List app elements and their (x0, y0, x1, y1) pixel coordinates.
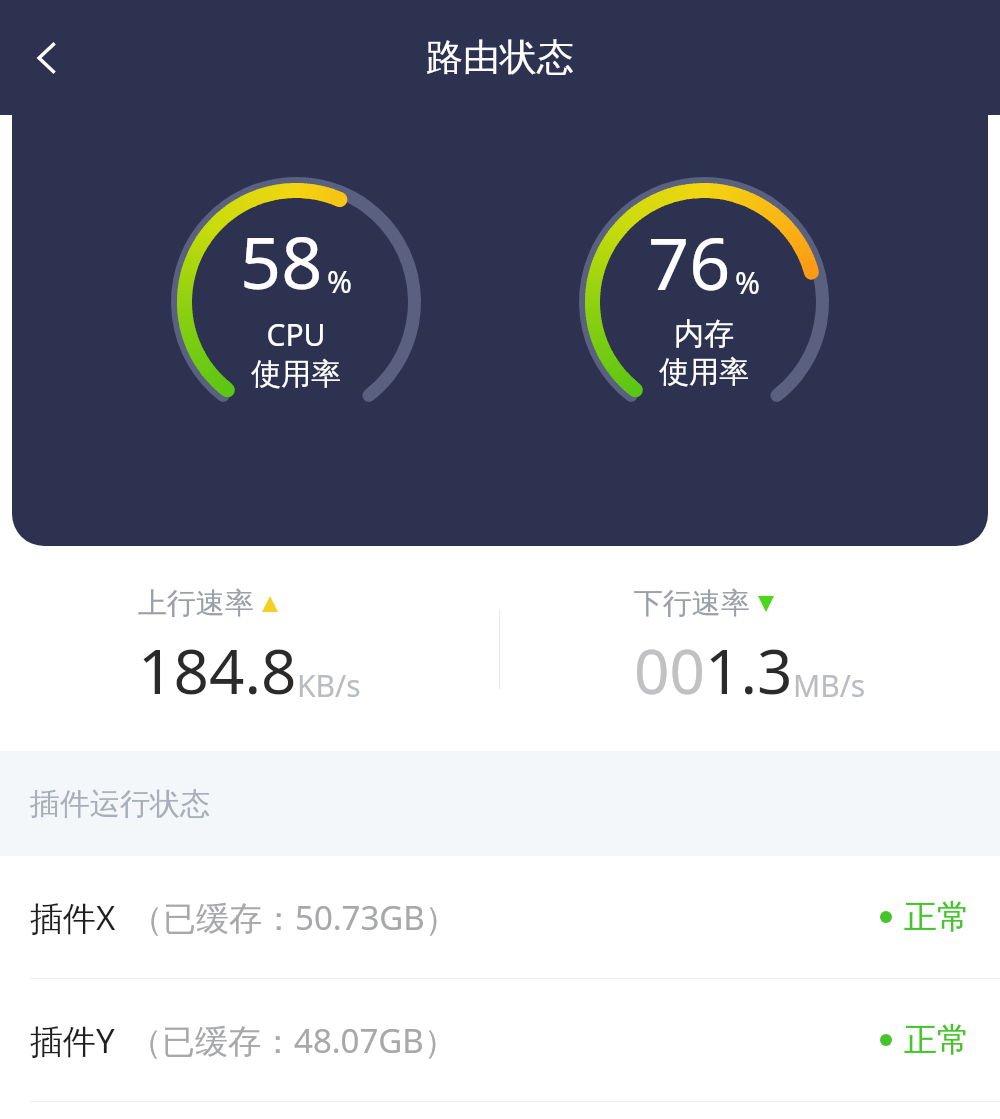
staticText: 内存 (674, 315, 734, 353)
staticText: 使用率 (251, 355, 341, 393)
staticText: 插件X (30, 895, 116, 940)
staticText: （已缓存：48.07GB） (129, 1018, 457, 1063)
staticText: 184.8 (138, 628, 297, 712)
staticText: （已缓存：50.73GB） (130, 895, 458, 940)
staticText: 正常 (904, 896, 970, 938)
staticText: 58 (240, 212, 323, 310)
staticText: 1.3 (705, 628, 793, 712)
staticText: 上行速率 (138, 585, 254, 622)
staticText: 插件Y (30, 1018, 115, 1063)
button[interactable]: 插件Y (0, 979, 1000, 1101)
staticText: 下行速率 (634, 585, 750, 622)
staticText: 76 (648, 213, 731, 311)
button[interactable]: Back (14, 25, 80, 91)
staticText: 插件运行状态 (30, 785, 210, 823)
staticText: 正常 (904, 1019, 970, 1061)
staticText: KB/s (297, 665, 361, 706)
staticText: % (735, 262, 760, 303)
staticText: 路由状态 (426, 34, 574, 81)
staticText: CPU (266, 314, 326, 355)
staticText: 使用率 (659, 353, 749, 391)
button[interactable]: 插件X (0, 856, 1000, 978)
staticText: % (327, 261, 352, 302)
staticText: MB/s (793, 665, 866, 706)
staticText: 00 (634, 628, 705, 712)
